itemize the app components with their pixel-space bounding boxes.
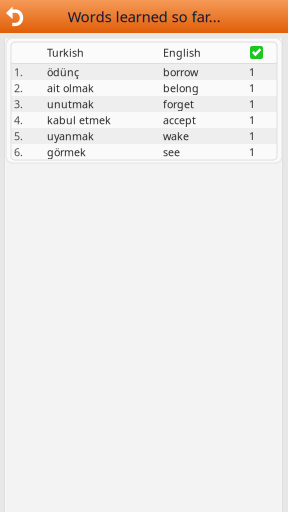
staticText: belong <box>163 81 199 95</box>
staticText: 3. <box>14 97 23 111</box>
staticText: 5. <box>14 129 23 143</box>
staticText: 1 <box>249 97 255 111</box>
button[interactable]: Back <box>0 0 30 33</box>
staticText: borrow <box>163 65 198 79</box>
button[interactable]: Select all <box>250 46 263 59</box>
staticText: ödünç <box>47 65 79 79</box>
staticText: ait olmak <box>47 81 94 95</box>
staticText: see <box>163 145 180 159</box>
staticText: Words learned so far... <box>67 7 220 26</box>
staticText: wake <box>163 129 189 143</box>
staticText: 1. <box>14 65 23 79</box>
staticText: English <box>163 45 201 60</box>
staticText: 2. <box>14 81 23 95</box>
staticText: 4. <box>14 113 23 127</box>
staticText: 1 <box>249 113 255 127</box>
staticText: 1 <box>249 129 255 143</box>
staticText: forget <box>163 97 194 111</box>
staticText: Turkish <box>47 45 84 60</box>
staticText: görmek <box>47 145 86 159</box>
staticText: unutmak <box>47 97 94 111</box>
staticText: 1 <box>249 65 255 79</box>
staticText: kabul etmek <box>47 113 111 127</box>
staticText: 1 <box>249 81 255 95</box>
staticText: accept <box>163 113 196 127</box>
staticText: uyanmak <box>47 129 94 143</box>
staticText: 6. <box>14 145 23 159</box>
staticText: 1 <box>249 145 255 159</box>
